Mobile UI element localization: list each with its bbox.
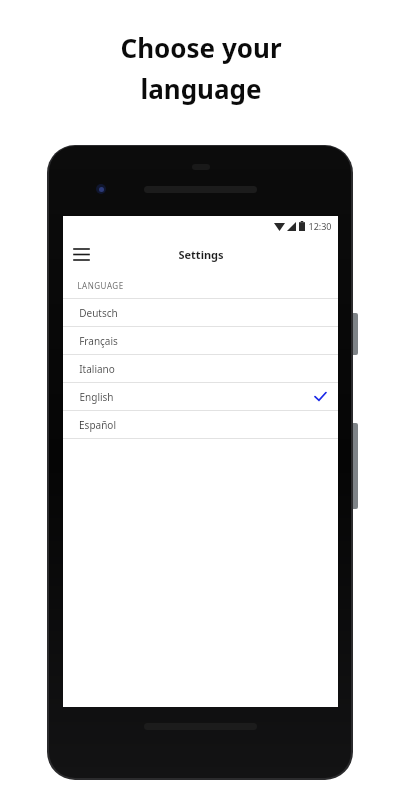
button[interactable]: Español — [63, 411, 338, 438]
staticText: 12:30 — [308, 220, 332, 232]
button[interactable]: Deutsch — [63, 299, 338, 326]
staticText: Italiano — [79, 362, 115, 376]
staticText: LANGUAGE — [77, 280, 124, 291]
staticText: Settings — [178, 247, 224, 262]
button[interactable]: Open navigation menu — [69, 242, 93, 266]
button[interactable]: Italiano — [63, 355, 338, 382]
button[interactable]: English — [63, 383, 338, 410]
staticText: Choose your — [120, 30, 282, 65]
staticText: English — [79, 390, 114, 404]
button[interactable]: Français — [63, 327, 338, 354]
staticText: language — [140, 71, 262, 106]
staticText: Français — [79, 334, 118, 348]
staticText: Español — [79, 418, 116, 432]
staticText: Deutsch — [79, 306, 118, 320]
